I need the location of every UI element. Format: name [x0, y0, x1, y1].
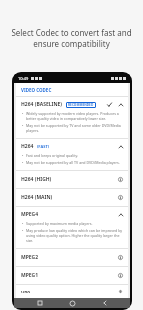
button[interactable]: Info — [117, 194, 124, 201]
staticText: RECOMMENDED — [68, 103, 94, 107]
button[interactable]: H264 (HIGH) — [16, 171, 128, 188]
staticText: MPEG4 — [21, 211, 39, 218]
staticText: • — [22, 221, 24, 226]
staticText: VIDEO CODEC — [21, 87, 52, 93]
staticText: • — [22, 228, 24, 233]
staticText: 10:49 — [18, 76, 29, 81]
button[interactable]: H264 (BASELINE) — [16, 97, 128, 138]
button[interactable]: Collapse — [117, 211, 124, 218]
button[interactable]: Info — [117, 272, 124, 279]
staticText: May produce low quality video which can … — [26, 228, 123, 243]
button[interactable]: Info — [117, 176, 124, 183]
button[interactable]: Info — [117, 290, 124, 293]
button[interactable]: Selected — [106, 101, 113, 108]
staticText: • — [22, 160, 24, 165]
button[interactable]: MPEG4 — [16, 207, 128, 248]
button[interactable]: H264 (MAIN) — [16, 189, 128, 206]
staticText: Widely supported by modern video players… — [26, 111, 123, 121]
button[interactable]: Collapse — [117, 101, 124, 108]
button[interactable]: Home — [65, 298, 79, 308]
button[interactable]: MPEG2 — [16, 249, 128, 266]
button[interactable]: H264 — [16, 139, 128, 170]
staticText: Fast and keeps original quality. — [26, 153, 79, 158]
button[interactable]: Info — [117, 254, 124, 261]
staticText: VP9 — [21, 290, 31, 293]
button[interactable]: MPEG1 — [16, 267, 128, 284]
staticText: • — [22, 153, 24, 158]
staticText: MPEG2 — [21, 254, 39, 261]
button[interactable]: Back — [98, 298, 112, 308]
staticText: H264 (BASELINE) — [21, 101, 63, 108]
staticText: May not be supported by all TV and DVD/M… — [26, 160, 120, 165]
button[interactable]: VP9 — [16, 285, 128, 298]
staticText: Supported by maximum media players. — [26, 221, 93, 226]
staticText: H264 (MAIN) — [21, 194, 53, 201]
staticText: (FAST) — [37, 144, 50, 149]
button[interactable]: Recents — [33, 298, 47, 308]
button[interactable]: Collapse — [117, 143, 124, 150]
staticText: May not be supported by TV and some olde… — [26, 123, 123, 133]
staticText: H264 (HIGH) — [21, 176, 52, 183]
staticText: H264 — [21, 143, 34, 150]
staticText: • — [22, 111, 24, 116]
staticText: Select Codec to convert fast and ensure … — [6, 27, 137, 49]
staticText: • — [22, 123, 24, 128]
staticText: MPEG1 — [21, 272, 39, 279]
